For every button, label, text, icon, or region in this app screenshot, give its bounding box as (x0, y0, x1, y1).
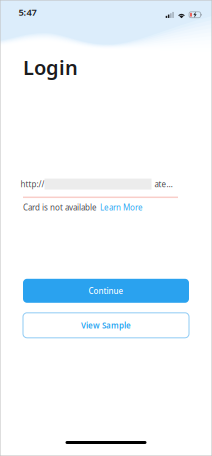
button[interactable]: Learn More (100, 202, 143, 213)
staticText: View Sample (81, 320, 131, 331)
button[interactable]: Continue (23, 279, 189, 303)
button[interactable]: View Sample (23, 313, 189, 338)
staticText: Card is not available (23, 202, 97, 213)
staticText: ate… (154, 179, 172, 189)
staticText: Continue (88, 285, 123, 296)
staticText: http:// (20, 179, 44, 189)
staticText: Learn More (100, 202, 143, 213)
staticText: Login (23, 54, 78, 81)
staticText: 5:47 (18, 6, 36, 18)
